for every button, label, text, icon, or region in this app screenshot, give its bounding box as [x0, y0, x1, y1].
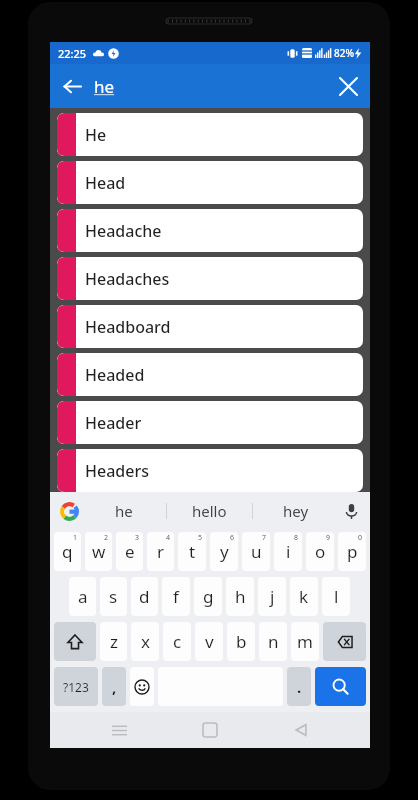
- button[interactable]: [130, 667, 154, 706]
- button[interactable]: v: [195, 622, 223, 661]
- staticText: r: [157, 540, 165, 563]
- button[interactable]: f: [162, 577, 190, 616]
- button[interactable]: w: [85, 532, 112, 571]
- button[interactable]: Headers: [57, 449, 363, 492]
- button[interactable]: r: [147, 532, 174, 571]
- button[interactable]: i: [274, 532, 302, 571]
- button[interactable]: d: [131, 577, 158, 616]
- button[interactable]: hello: [167, 492, 252, 529]
- button[interactable]: x: [131, 622, 159, 661]
- button[interactable]: m: [291, 622, 319, 661]
- staticText: 82%: [334, 46, 354, 60]
- button[interactable]: l: [322, 577, 350, 616]
- staticText: o: [315, 540, 326, 563]
- button[interactable]: p: [338, 532, 366, 571]
- staticText: Header: [85, 412, 142, 434]
- button[interactable]: Google: [56, 498, 82, 524]
- staticText: he: [115, 501, 133, 521]
- staticText: Headache: [85, 220, 162, 242]
- button[interactable]: Headaches: [57, 257, 363, 300]
- button[interactable]: Headed: [57, 353, 363, 396]
- button[interactable]: he: [82, 492, 166, 529]
- staticText: d: [139, 585, 150, 608]
- staticText: 3: [135, 533, 140, 543]
- button[interactable]: n: [259, 622, 287, 661]
- button[interactable]: Back: [279, 712, 323, 748]
- button[interactable]: .: [287, 667, 311, 706]
- button[interactable]: Headache: [57, 209, 363, 252]
- button[interactable]: z: [100, 622, 127, 661]
- button[interactable]: Clear: [326, 64, 370, 108]
- staticText: h: [235, 585, 246, 608]
- button[interactable]: Backspace: [323, 622, 366, 661]
- staticText: x: [141, 630, 150, 653]
- button[interactable]: ?123: [54, 667, 98, 706]
- staticText: m: [297, 630, 313, 653]
- staticText: t: [189, 540, 196, 563]
- staticText: 2: [104, 533, 109, 543]
- staticText: 22:25: [58, 46, 87, 61]
- button[interactable]: Shift: [54, 622, 96, 661]
- staticText: hello: [192, 501, 227, 521]
- button[interactable]: Voice input: [338, 498, 364, 524]
- button[interactable]: t: [178, 532, 206, 571]
- button[interactable]: Search: [315, 667, 366, 706]
- staticText: c: [173, 630, 182, 653]
- staticText: ,: [112, 677, 117, 697]
- staticText: 7: [262, 533, 267, 543]
- button[interactable]: c: [163, 622, 191, 661]
- button[interactable]: he: [94, 64, 326, 108]
- button[interactable]: ,: [102, 667, 126, 706]
- staticText: 1: [73, 533, 78, 543]
- staticText: n: [268, 630, 279, 653]
- button[interactable]: k: [290, 577, 318, 616]
- staticText: s: [109, 585, 118, 608]
- staticText: i: [286, 540, 291, 563]
- staticText: a: [78, 585, 88, 608]
- staticText: 8: [294, 533, 299, 543]
- button[interactable]: y: [210, 532, 238, 571]
- button[interactable]: hey: [253, 492, 338, 529]
- staticText: z: [110, 630, 118, 653]
- staticText: Headers: [85, 460, 149, 482]
- staticText: j: [270, 585, 275, 608]
- button[interactable]: Back: [50, 64, 94, 108]
- button[interactable]: s: [100, 577, 127, 616]
- staticText: he: [94, 75, 115, 98]
- staticText: w: [92, 540, 106, 563]
- button[interactable]: g: [194, 577, 222, 616]
- staticText: k: [299, 585, 309, 608]
- button[interactable]: q: [54, 532, 81, 571]
- button[interactable]: h: [226, 577, 254, 616]
- staticText: ?123: [63, 679, 89, 695]
- button[interactable]: j: [258, 577, 286, 616]
- staticText: u: [251, 540, 262, 563]
- staticText: e: [125, 540, 135, 563]
- staticText: 5: [198, 533, 203, 543]
- staticText: p: [347, 540, 358, 563]
- staticText: l: [334, 585, 339, 608]
- staticText: b: [236, 630, 247, 653]
- button[interactable]: Head: [57, 161, 363, 204]
- staticText: hey: [283, 501, 309, 521]
- button[interactable]: a: [69, 577, 96, 616]
- staticText: 4: [166, 533, 171, 543]
- staticText: 0: [358, 533, 363, 543]
- staticText: f: [173, 585, 179, 608]
- staticText: .: [297, 677, 302, 697]
- button[interactable]: He: [57, 113, 363, 156]
- staticText: y: [220, 540, 229, 563]
- button[interactable]: o: [306, 532, 334, 571]
- button[interactable]: b: [227, 622, 255, 661]
- staticText: v: [205, 630, 214, 653]
- button[interactable]: Recent apps: [97, 712, 141, 748]
- button[interactable]: Headboard: [57, 305, 363, 348]
- button[interactable]: u: [242, 532, 270, 571]
- button[interactable]: Home: [188, 712, 232, 748]
- staticText: Headed: [85, 364, 145, 386]
- button[interactable]: Header: [57, 401, 363, 444]
- staticText: q: [62, 540, 73, 563]
- button[interactable]: e: [116, 532, 143, 571]
- staticText: Headboard: [85, 316, 171, 338]
